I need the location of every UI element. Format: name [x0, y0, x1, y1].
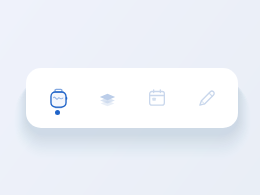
button[interactable]: Calendar [140, 78, 174, 118]
button[interactable]: Edit [189, 78, 223, 118]
button[interactable]: Layers [90, 78, 124, 118]
button[interactable]: Watch [41, 78, 75, 118]
